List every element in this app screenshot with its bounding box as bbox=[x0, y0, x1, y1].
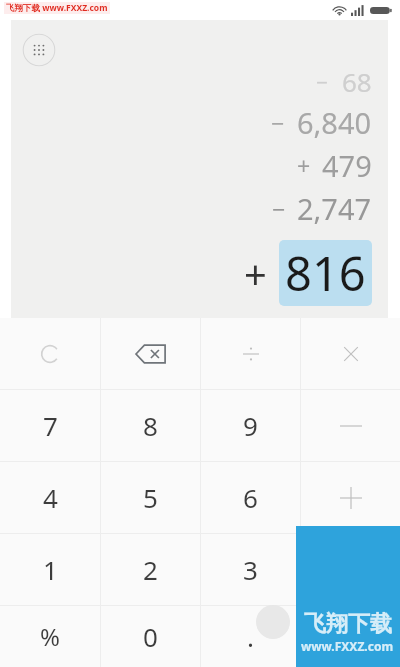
staticText: . bbox=[247, 619, 254, 654]
button[interactable]: 4 bbox=[0, 462, 100, 533]
other: Multiply bbox=[341, 344, 361, 364]
other: Clear bbox=[39, 343, 61, 365]
button[interactable]: Backspace bbox=[101, 318, 200, 389]
button[interactable]: Clear bbox=[0, 318, 100, 389]
staticText: 0 bbox=[143, 619, 158, 654]
other: Backspace bbox=[136, 344, 166, 364]
staticText: 479 bbox=[322, 146, 372, 185]
staticText: 2 bbox=[143, 552, 158, 587]
button[interactable]: 0 bbox=[101, 606, 200, 667]
button[interactable]: 1 bbox=[0, 534, 100, 605]
staticText: 6,840 bbox=[297, 103, 372, 142]
staticText: − bbox=[272, 193, 286, 225]
staticText: 6 bbox=[243, 480, 258, 515]
other: Divide bbox=[241, 344, 261, 364]
staticText: 4 bbox=[43, 480, 58, 515]
button[interactable]: 3 bbox=[201, 534, 300, 605]
staticText: − bbox=[316, 68, 328, 96]
staticText: 816 bbox=[285, 241, 366, 305]
button[interactable]: 5 bbox=[101, 462, 200, 533]
staticText: 68 bbox=[342, 64, 372, 99]
button[interactable]: 2 bbox=[101, 534, 200, 605]
other: Plus bbox=[340, 487, 362, 509]
button[interactable]: % bbox=[0, 606, 100, 667]
button[interactable]: 8 bbox=[101, 390, 200, 461]
staticText: 1 bbox=[43, 552, 58, 587]
staticText: % bbox=[40, 620, 60, 653]
button[interactable]: 7 bbox=[0, 390, 100, 461]
button[interactable]: Open history bbox=[22, 33, 56, 67]
staticText: www.FXXZ.com bbox=[301, 638, 394, 654]
staticText: 8 bbox=[143, 408, 158, 443]
staticText: 5 bbox=[143, 480, 158, 515]
button[interactable]: 6 bbox=[201, 462, 300, 533]
staticText: 飞翔下载 www.FXXZ.com bbox=[6, 2, 108, 14]
button[interactable]: Equals bbox=[296, 526, 400, 667]
staticText: 9 bbox=[243, 408, 258, 443]
staticText: 2,747 bbox=[297, 189, 372, 228]
other: Minus bbox=[340, 419, 362, 433]
button[interactable]: . bbox=[201, 606, 300, 667]
staticText: − bbox=[271, 107, 285, 139]
button[interactable]: Plus bbox=[301, 462, 400, 533]
button[interactable]: 9 bbox=[201, 390, 300, 461]
staticText: + bbox=[244, 246, 267, 300]
staticText: 7 bbox=[43, 408, 58, 443]
staticText: + bbox=[297, 150, 311, 182]
button[interactable]: Multiply bbox=[301, 318, 400, 389]
staticText: 3 bbox=[243, 552, 258, 587]
staticText: 飞翔下载 bbox=[304, 610, 392, 638]
